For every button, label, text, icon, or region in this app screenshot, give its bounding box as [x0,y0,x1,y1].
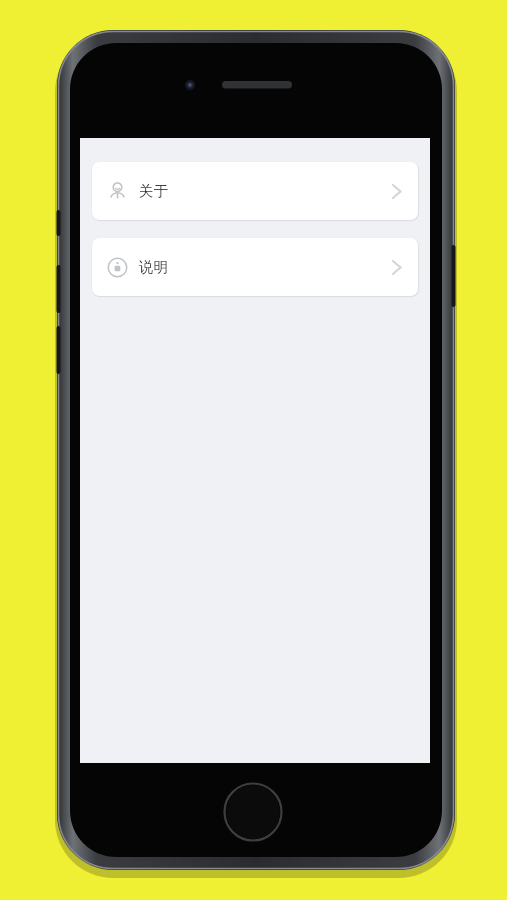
staticText: 说明 [139,258,168,276]
button[interactable]: 说明 [92,238,418,296]
button[interactable]: 关于 [92,162,418,220]
staticText: 关于 [139,182,168,200]
other: Open [391,182,402,201]
other: Open [391,258,402,277]
